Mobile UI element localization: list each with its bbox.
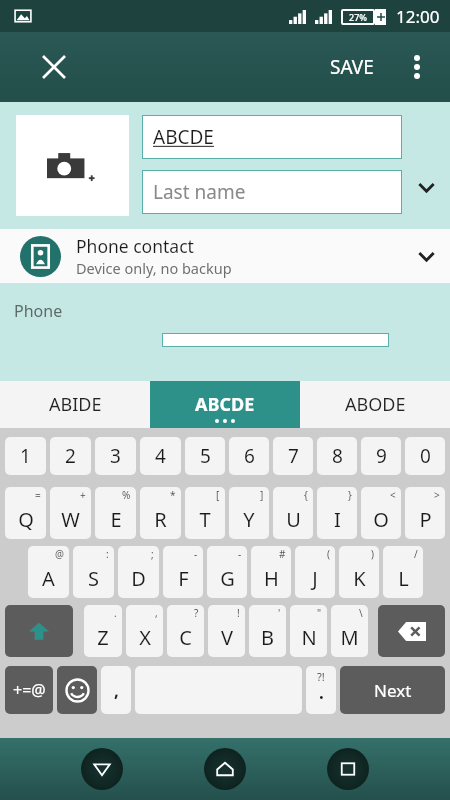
- staticText: ,: [114, 679, 119, 702]
- button[interactable]: *: [140, 487, 181, 539]
- staticText: +=@: [13, 679, 46, 701]
- button[interactable]: 4: [140, 437, 181, 475]
- button[interactable]: %: [95, 487, 136, 539]
- button[interactable]: 0: [405, 437, 445, 475]
- button[interactable]: 7: [273, 437, 313, 475]
- staticText: F: [178, 565, 189, 592]
- button[interactable]: ]: [229, 487, 269, 539]
- staticText: 12:00: [396, 5, 440, 28]
- button[interactable]: Shift: [5, 605, 73, 657]
- button[interactable]: ,: [101, 666, 131, 714]
- staticText: /: [414, 547, 418, 561]
- button[interactable]: 9: [361, 437, 401, 475]
- button[interactable]: SAVE: [322, 46, 382, 88]
- button[interactable]: Last name: [142, 170, 402, 214]
- button[interactable]: .: [84, 605, 122, 657]
- staticText: Phone: [14, 300, 63, 322]
- button[interactable]: ABIDE: [0, 381, 150, 428]
- button[interactable]: {: [273, 487, 313, 539]
- button[interactable]: Home: [204, 748, 246, 790]
- button[interactable]: 6: [229, 437, 269, 475]
- button[interactable]: -: [207, 546, 247, 598]
- button[interactable]: Expand name fields: [402, 102, 450, 229]
- staticText: R: [154, 506, 167, 533]
- staticText: SAVE: [330, 54, 374, 80]
- button[interactable]: @: [28, 546, 69, 598]
- button[interactable]: ": [290, 605, 327, 657]
- button[interactable]: ABODE: [300, 381, 450, 428]
- button[interactable]: Recent apps: [327, 748, 369, 790]
- staticText: ABCDE: [153, 124, 214, 150]
- staticText: ?!: [317, 669, 325, 684]
- staticText: X: [139, 624, 151, 651]
- button[interactable]: ): [339, 546, 379, 598]
- staticText: }: [348, 488, 352, 502]
- button[interactable]: /: [383, 546, 423, 598]
- staticText: O: [373, 506, 389, 533]
- button[interactable]: [162, 333, 389, 347]
- button[interactable]: +: [50, 487, 91, 539]
- staticText: C: [179, 624, 192, 651]
- staticText: Phone contact: [76, 234, 194, 258]
- button[interactable]: Backspace: [378, 605, 445, 657]
- button[interactable]: 8: [317, 437, 357, 475]
- button[interactable]: Close: [34, 47, 74, 87]
- button[interactable]: }: [317, 487, 357, 539]
- staticText: ": [317, 606, 322, 620]
- button[interactable]: 2: [50, 437, 91, 475]
- staticText: .: [114, 606, 117, 620]
- staticText: L: [398, 565, 409, 592]
- button[interactable]: ;: [118, 546, 159, 598]
- staticText: .: [319, 681, 324, 704]
- button[interactable]: \: [331, 605, 368, 657]
- button[interactable]: +=@: [5, 666, 53, 714]
- staticText: Q: [18, 506, 34, 533]
- staticText: 0: [420, 443, 431, 469]
- button[interactable]: 5: [185, 437, 225, 475]
- button[interactable]: 1: [5, 437, 46, 475]
- staticText: ABCDE: [195, 392, 255, 417]
- staticText: Z: [97, 624, 109, 651]
- button[interactable]: #: [251, 546, 291, 598]
- button[interactable]: ?!: [306, 666, 336, 714]
- button[interactable]: (: [295, 546, 335, 598]
- staticText: W: [61, 506, 80, 533]
- button[interactable]: <: [361, 487, 401, 539]
- button[interactable]: !: [208, 605, 245, 657]
- staticText: ;: [151, 547, 154, 561]
- button[interactable]: :: [73, 546, 114, 598]
- staticText: ): [371, 547, 374, 561]
- staticText: ,: [155, 606, 158, 620]
- staticText: 8: [332, 443, 343, 469]
- button[interactable]: >: [405, 487, 445, 539]
- button[interactable]: Next: [340, 666, 445, 714]
- staticText: 6: [244, 443, 255, 469]
- staticText: B: [261, 624, 274, 651]
- button[interactable]: ,: [126, 605, 163, 657]
- button[interactable]: ABCDE: [150, 381, 300, 428]
- button[interactable]: Add photo: [16, 115, 129, 216]
- staticText: 5: [200, 443, 211, 469]
- staticText: E: [110, 506, 122, 533]
- staticText: 7: [288, 443, 299, 469]
- button[interactable]: Phone contact: [0, 229, 450, 283]
- button[interactable]: ABCDE: [142, 115, 402, 159]
- button[interactable]: More options: [396, 46, 438, 88]
- button[interactable]: Back: [81, 748, 123, 790]
- staticText: P: [419, 506, 432, 533]
- button[interactable]: Emoji: [57, 666, 97, 714]
- staticText: %: [122, 488, 131, 502]
- button[interactable]: 3: [95, 437, 136, 475]
- button[interactable]: -: [163, 546, 203, 598]
- staticText: 3: [110, 443, 121, 469]
- staticText: Device only, no backup: [76, 258, 232, 278]
- button[interactable]: ': [249, 605, 286, 657]
- staticText: H: [264, 565, 279, 592]
- button[interactable]: =: [5, 487, 46, 539]
- button[interactable]: ?: [167, 605, 204, 657]
- staticText: D: [131, 565, 146, 592]
- button[interactable]: [: [185, 487, 225, 539]
- staticText: 1: [20, 443, 31, 469]
- staticText: V: [221, 624, 233, 651]
